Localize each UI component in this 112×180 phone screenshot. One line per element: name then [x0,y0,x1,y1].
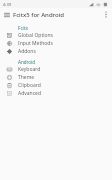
button[interactable]: Global Options [0,31,112,39]
staticText: Clipboard [18,82,41,89]
staticText: 4:39 [3,2,11,7]
staticText: Android [18,59,36,65]
button[interactable]: More options [99,8,112,21]
button[interactable]: Keyboard [0,65,112,73]
staticText: Theme [18,74,35,81]
staticText: Input Methods [18,40,53,47]
staticText: Addons [18,48,36,55]
button[interactable]: Theme [0,73,112,81]
button[interactable]: Advanced [0,89,112,97]
staticText: Global Options [18,32,54,39]
staticText: Fcitx5 for Android [13,11,99,19]
button[interactable]: Open navigation menu [0,8,13,21]
staticText: Fcitx [18,25,28,31]
staticText: Keyboard [18,66,41,73]
button[interactable]: Clipboard [0,81,112,89]
button[interactable]: Input Methods [0,39,112,47]
staticText: Advanced [18,90,42,97]
button[interactable]: Addons [0,47,112,55]
